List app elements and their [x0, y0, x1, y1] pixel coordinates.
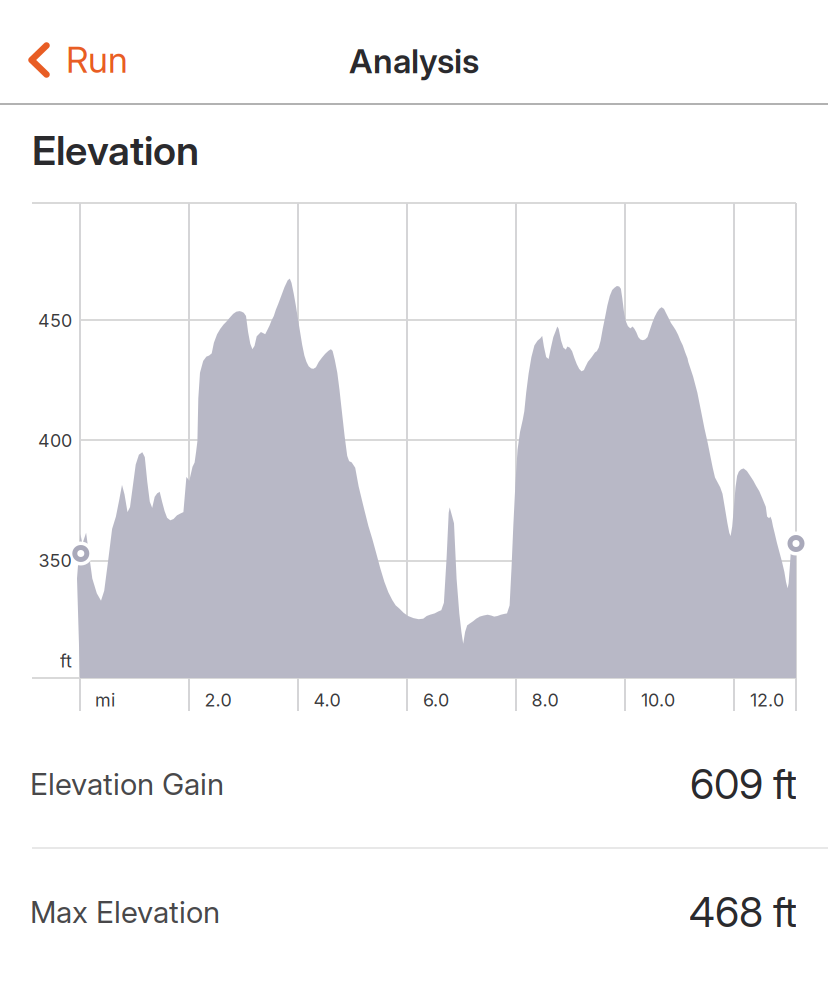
staticText: 468 ft: [689, 887, 797, 937]
staticText: Elevation Gain: [30, 766, 224, 802]
staticText: 400: [38, 430, 72, 451]
staticText: mi: [95, 689, 115, 711]
staticText: Max Elevation: [30, 894, 220, 930]
staticText: 2.0: [204, 689, 231, 711]
staticText: 609 ft: [690, 759, 797, 809]
button[interactable]: Elevation Gain: [0, 720, 828, 848]
staticText: ft: [60, 650, 72, 672]
staticText: 8.0: [531, 689, 558, 711]
staticText: 10.0: [641, 689, 675, 711]
staticText: Analysis: [349, 41, 479, 81]
staticText: 450: [38, 310, 72, 331]
staticText: 4.0: [313, 689, 340, 711]
staticText: Elevation: [32, 126, 199, 175]
button[interactable]: Run: [0, 9, 152, 111]
button[interactable]: Max Elevation: [0, 848, 828, 976]
staticText: 12.0: [750, 689, 784, 711]
staticText: 350: [38, 550, 71, 571]
staticText: Run: [66, 39, 128, 81]
staticText: 6.0: [423, 689, 449, 711]
